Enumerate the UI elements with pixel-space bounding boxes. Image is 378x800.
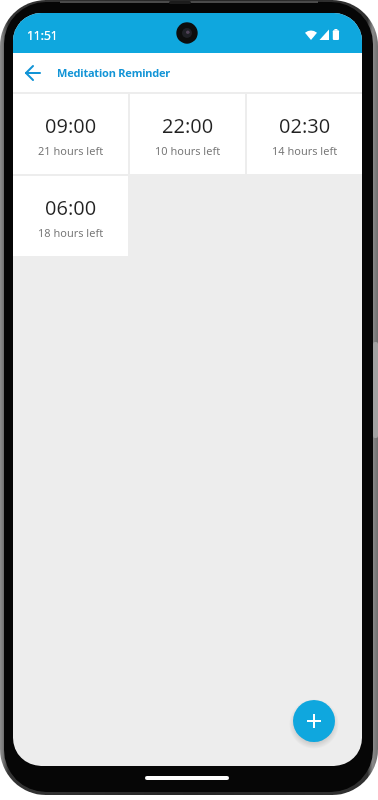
button[interactable]	[293, 700, 335, 742]
staticText: Meditation Reminder	[57, 65, 171, 80]
button[interactable]	[13, 53, 53, 92]
staticText: 21 hours left	[38, 143, 104, 158]
staticText: 22:00	[162, 112, 214, 139]
staticText: 09:00	[45, 112, 97, 139]
staticText: 10 hours left	[155, 143, 221, 158]
staticText: 02:30	[279, 112, 331, 139]
staticText: 14 hours left	[272, 143, 338, 158]
button[interactable]: 09:00	[13, 94, 128, 174]
staticText: 11:51	[27, 27, 58, 43]
button[interactable]: 02:30	[247, 94, 362, 174]
button[interactable]: 06:00	[13, 176, 128, 256]
staticText: 06:00	[45, 194, 97, 221]
button[interactable]: 22:00	[130, 94, 245, 174]
staticText: 18 hours left	[38, 225, 104, 240]
